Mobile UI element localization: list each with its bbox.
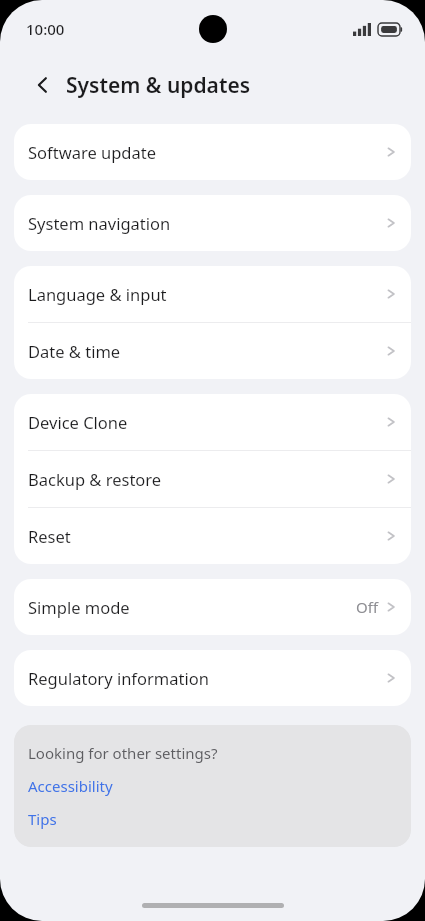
button[interactable]: Back [26,68,60,102]
staticText: System & updates [66,71,251,100]
staticText: Language & input [28,283,167,305]
staticText: Date & time [28,340,121,362]
button[interactable]: Language & input [14,266,411,322]
staticText: Tips [28,809,57,829]
staticText: Off [356,597,379,617]
staticText: Accessibility [28,776,113,796]
staticText: 10:00 [26,19,65,39]
staticText: Backup & restore [28,468,162,490]
button[interactable]: Regulatory information [14,650,411,706]
staticText: System navigation [28,212,171,234]
staticText: Looking for other settings? [28,743,218,763]
button[interactable]: Tips [28,809,57,829]
button[interactable]: System navigation [14,195,411,251]
button[interactable]: Accessibility [28,776,113,796]
staticText: Regulatory information [28,667,209,689]
button[interactable]: Simple mode [14,579,411,635]
staticText: Simple mode [28,596,130,618]
staticText: Device Clone [28,411,128,433]
button[interactable]: Backup & restore [14,451,411,507]
staticText: Reset [28,525,71,547]
button[interactable]: Reset [14,508,411,564]
staticText: Software update [28,141,156,163]
button[interactable]: Software update [14,124,411,180]
button[interactable]: Device Clone [14,394,411,450]
button[interactable]: Date & time [14,323,411,379]
